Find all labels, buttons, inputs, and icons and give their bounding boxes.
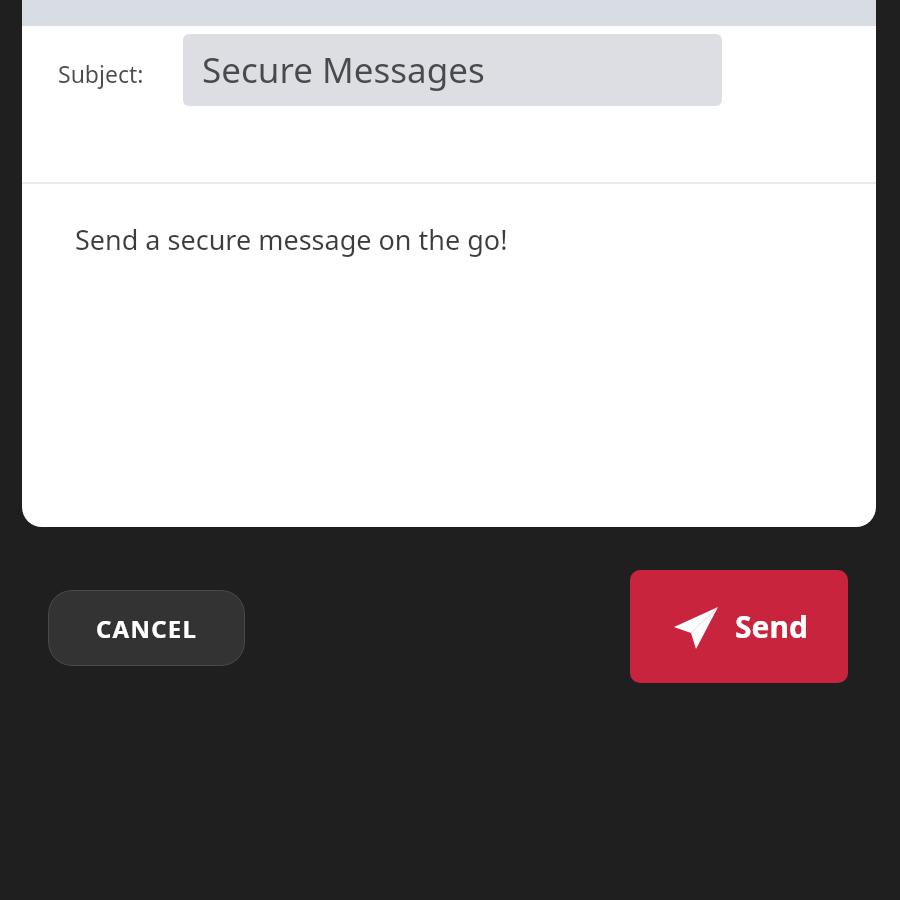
- staticText: Subject:: [58, 58, 144, 89]
- other: Send: [671, 602, 721, 652]
- staticText: Send: [735, 606, 808, 647]
- button[interactable]: Secure Messages: [183, 34, 722, 106]
- staticText: CANCEL: [96, 612, 197, 645]
- staticText: Secure Messages: [202, 46, 485, 94]
- staticText: Send a secure message on the go!: [75, 221, 508, 258]
- button[interactable]: CANCEL: [48, 590, 245, 666]
- button[interactable]: Send: [630, 570, 848, 683]
